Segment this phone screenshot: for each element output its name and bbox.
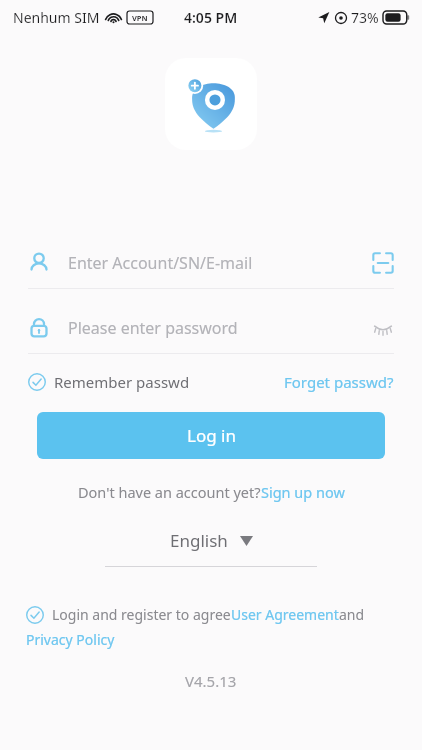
staticText: 73% — [351, 8, 379, 27]
staticText: Log in — [187, 424, 236, 447]
staticText: English — [170, 529, 228, 552]
staticText: VPN — [132, 13, 148, 23]
staticText: Login and register to agree — [52, 605, 231, 624]
staticText: User Agreement — [231, 605, 339, 624]
staticText: V4.5.13 — [185, 671, 237, 691]
staticText: Enter Account/SN/E-mail — [68, 252, 253, 274]
button[interactable]: Forget passwd? — [282, 366, 396, 398]
staticText: Please enter password — [68, 317, 238, 339]
button[interactable]: Don't have an account yet? — [74, 479, 349, 505]
button[interactable]: English — [162, 527, 261, 554]
staticText: and — [339, 605, 365, 624]
staticText: 4:05 PM — [184, 8, 238, 27]
button[interactable]: Scan QR code — [364, 246, 402, 280]
staticText: Don't have an account yet? — [78, 482, 261, 502]
button[interactable]: Please enter password — [0, 311, 422, 354]
staticText: Remember passwd — [54, 372, 190, 392]
staticText: Privacy Policy — [26, 630, 115, 649]
button[interactable]: Show password — [364, 311, 402, 345]
staticText: Sign up now — [261, 482, 345, 502]
button[interactable]: Enter Account/SN/E-mail — [0, 246, 422, 289]
staticText: Forget passwd? — [284, 372, 394, 392]
button[interactable]: Login and register to agree — [26, 605, 400, 649]
button[interactable]: Remember passwd — [26, 366, 192, 398]
staticText: Nenhum SIM — [13, 8, 100, 27]
button[interactable]: Log in — [37, 412, 385, 459]
